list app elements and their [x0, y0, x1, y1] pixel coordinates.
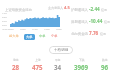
staticText: 亿元: [100, 32, 106, 36]
staticText: 3969: [74, 63, 89, 71]
button[interactable]: 大单: [24, 34, 35, 40]
staticText: 主力净流入: [48, 6, 63, 10]
staticText: 小单: [51, 34, 58, 38]
staticText: 28: [12, 63, 20, 71]
button[interactable]: 中单: [39, 34, 46, 38]
staticText: -10.44: [89, 18, 103, 24]
button[interactable]: 北向资金流: [71, 30, 106, 36]
staticText: 0.4%: [2, 20, 7, 23]
button[interactable]: 跌停: [101, 58, 109, 71]
button[interactable]: 沪股通流入: [71, 6, 107, 12]
staticText: 沪股通流入: [71, 8, 88, 12]
button[interactable]: 下跌: [74, 58, 89, 71]
staticText: -0.4%: [2, 28, 8, 31]
button[interactable]: 深股通流入: [71, 18, 110, 24]
staticText: 34: [54, 63, 62, 71]
staticText: 深股通流入: [71, 20, 88, 24]
staticText: 96: [101, 63, 109, 71]
staticText: 平盘: [55, 58, 61, 62]
staticText: 09:30: [8, 28, 14, 31]
staticText: 10:30: [20, 28, 26, 31]
staticText: 北向资金流: [71, 32, 88, 36]
staticText: 中单: [39, 34, 46, 38]
staticText: 超大单: [9, 34, 19, 38]
staticText: 跌停: [102, 58, 108, 62]
staticText: 大单: [26, 35, 33, 39]
button[interactable]: 上涨: [32, 58, 43, 71]
staticText: 1.2%: [2, 12, 7, 15]
staticText: 15:00: [56, 28, 62, 31]
staticText: 0.8%: [2, 16, 7, 19]
staticText: 上证指数资金流向: [5, 8, 33, 12]
staticText: 7.76: [89, 30, 99, 36]
staticText: 14:00: [44, 28, 50, 31]
staticText: 亿元: [104, 20, 110, 24]
button[interactable]: 平盘: [54, 58, 62, 71]
button[interactable]: 十档明细: [49, 46, 73, 54]
staticText: 475: [32, 63, 43, 71]
staticText: 11:30: [32, 28, 38, 31]
staticText: 4.5: [64, 5, 70, 10]
staticText: 0.0%: [2, 24, 7, 27]
button[interactable]: 涨停: [12, 58, 20, 71]
staticText: 上涨: [35, 58, 41, 62]
staticText: 下跌: [79, 58, 85, 62]
staticText: 亿元: [101, 8, 107, 12]
button[interactable]: 小单: [51, 34, 58, 38]
staticText: -2.44: [89, 6, 100, 12]
button[interactable]: 主力净流入: [48, 5, 70, 10]
button[interactable]: 超大单: [9, 34, 19, 38]
staticText: 涨停: [13, 58, 19, 62]
staticText: 十档明细: [54, 48, 69, 53]
